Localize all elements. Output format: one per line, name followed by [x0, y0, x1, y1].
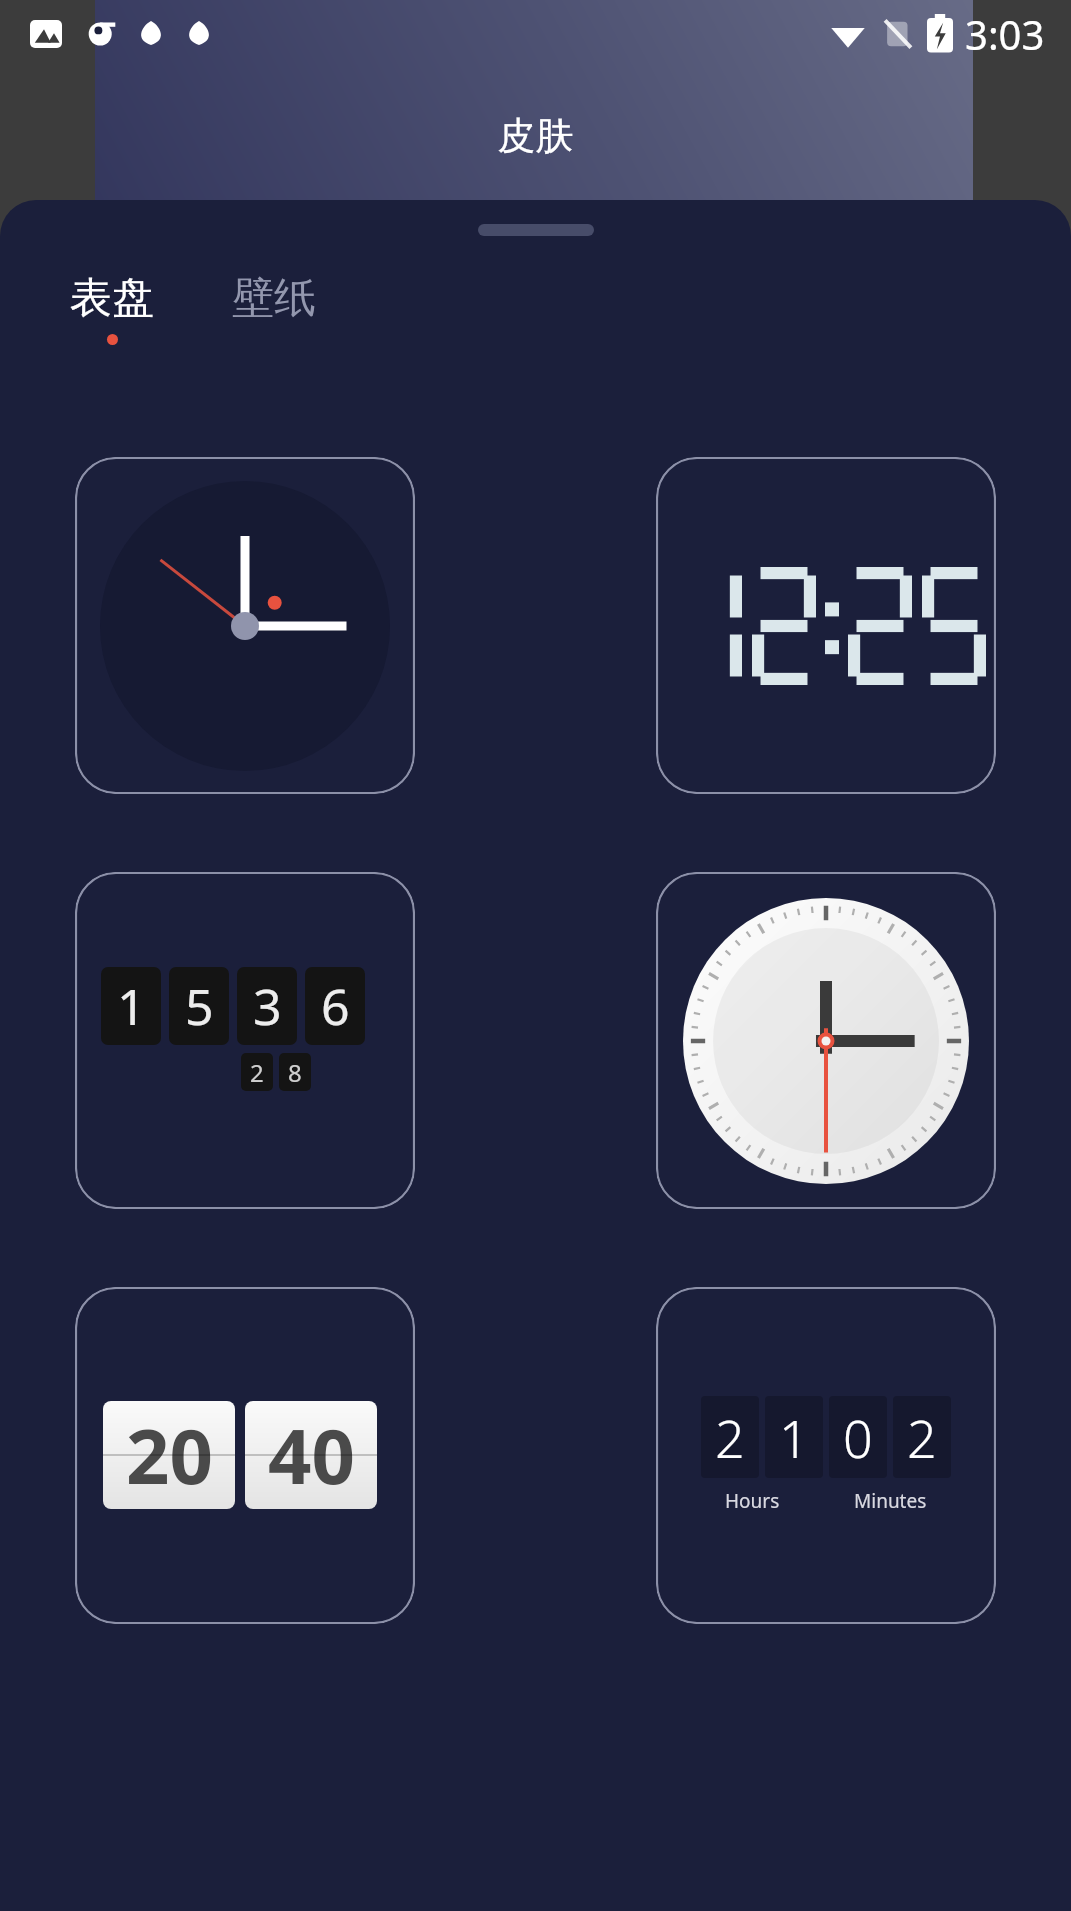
staticText: 0 — [843, 1402, 873, 1473]
button[interactable]: 表盘 — [70, 272, 154, 345]
staticText: 8 — [288, 1056, 302, 1089]
staticText: 2 — [907, 1402, 937, 1473]
staticText: 3 — [253, 972, 282, 1040]
staticText: 1 — [779, 1402, 809, 1473]
staticText: 皮肤 — [0, 112, 1071, 160]
staticText: 40 — [268, 1403, 355, 1507]
button[interactable]: 20 — [75, 1287, 415, 1624]
staticText: 2 — [250, 1056, 264, 1089]
staticText: 3:03 — [965, 7, 1045, 61]
button[interactable] — [75, 457, 415, 794]
staticText: 20 — [126, 1403, 213, 1507]
staticText: 6 — [321, 972, 350, 1040]
staticText: 2 — [715, 1402, 745, 1473]
staticText: Hours — [725, 1488, 780, 1514]
button[interactable] — [656, 457, 996, 794]
button[interactable]: 壁纸 — [232, 272, 316, 325]
staticText: 5 — [185, 972, 214, 1040]
staticText: Minutes — [854, 1488, 927, 1514]
button[interactable]: 1 — [75, 872, 415, 1209]
button[interactable]: 2 — [656, 1287, 996, 1624]
staticText: 壁纸 — [232, 272, 316, 325]
staticText: 1 — [117, 972, 146, 1040]
button[interactable] — [656, 872, 996, 1209]
staticText: 表盘 — [70, 272, 154, 325]
